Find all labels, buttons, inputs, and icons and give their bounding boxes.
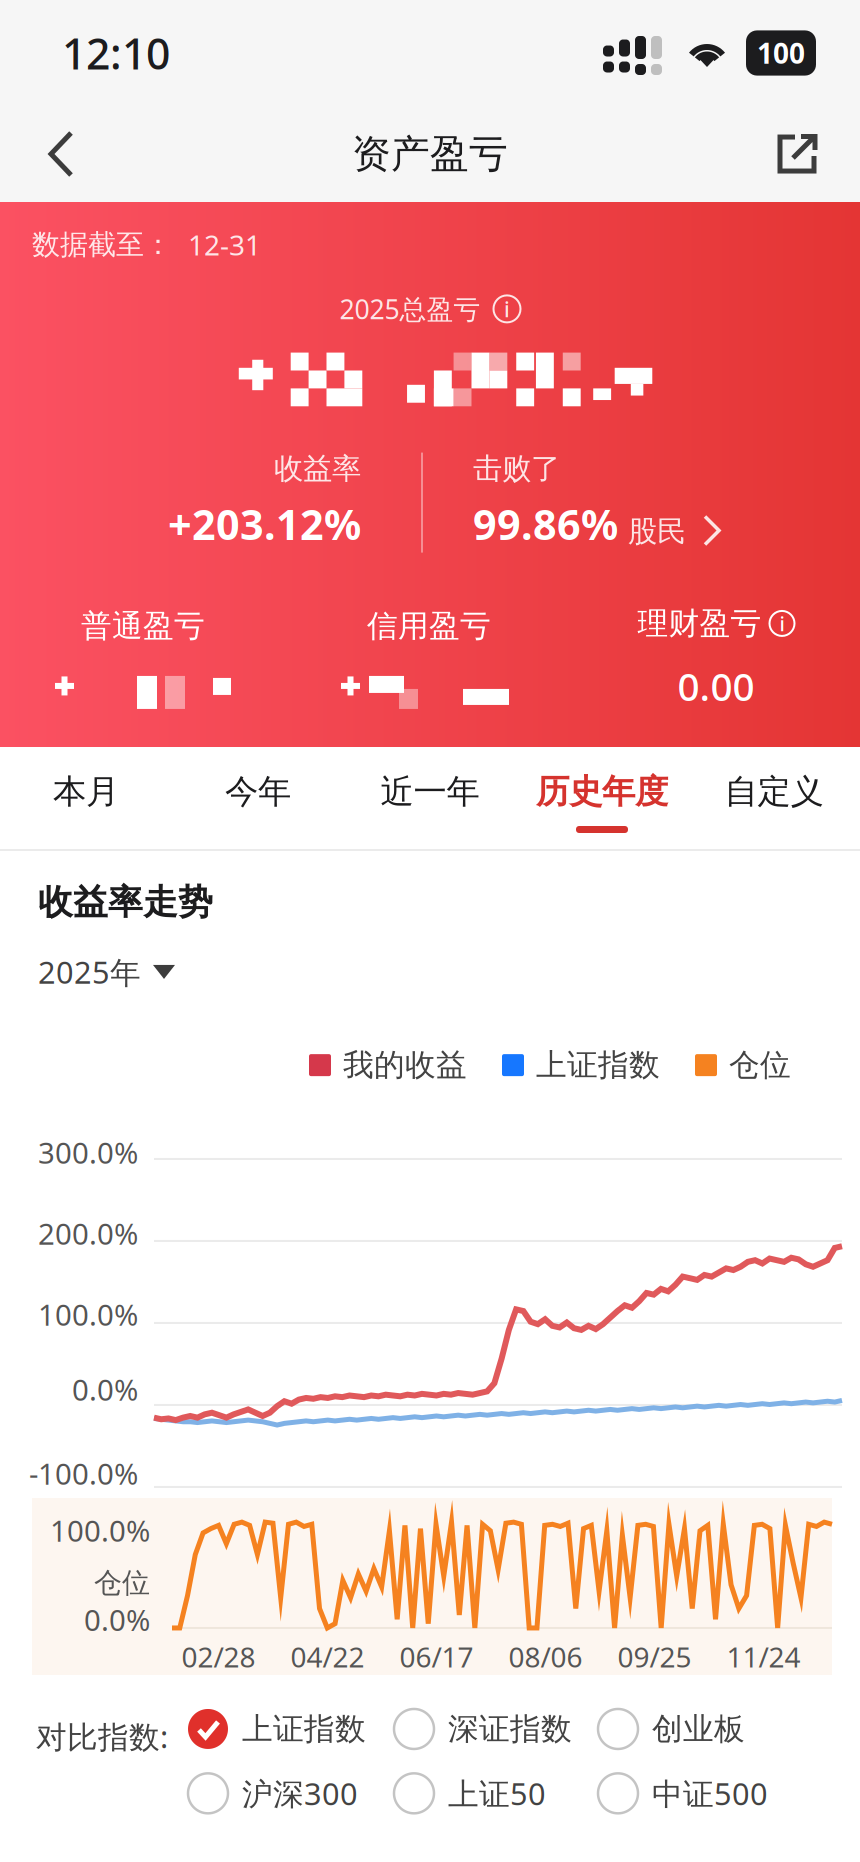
staticText: 06/17 [399,1638,473,1675]
staticText: 信用盈亏 [367,607,491,645]
staticText: 2025总盈亏 [339,291,480,327]
staticText: 100.0% [50,1511,150,1550]
staticText: 中证500 [652,1773,768,1814]
staticText: 08/06 [508,1638,582,1675]
staticText: 普通盈亏 [81,607,205,645]
staticText: 对比指数: [36,1716,168,1757]
staticText: -100.0% [29,1454,138,1493]
staticText: 仓位 [94,1566,150,1600]
staticText: 历史年度 [536,771,668,812]
staticText: 100.0% [38,1295,138,1334]
staticText: 04/22 [290,1638,364,1675]
staticText: 100 [757,34,805,72]
staticText: 本月 [53,771,119,812]
staticText: 上证指数 [242,1710,366,1748]
staticText: 11/24 [726,1638,800,1675]
button[interactable]: 上证指数 [188,1709,366,1749]
staticText: 收益率 [274,451,361,487]
staticText: 仓位 [729,1046,791,1084]
staticText: 沪深300 [242,1773,358,1814]
button[interactable]: 本月 [0,747,172,849]
staticText: 12:10 [62,25,170,81]
staticText: 数据截至： [32,227,172,262]
staticText: 股民 [628,513,686,549]
button[interactable]: 今年 [172,747,344,849]
staticText: 0.00 [677,660,754,712]
staticText: 02/28 [181,1638,255,1675]
button[interactable]: 近一年 [344,747,516,849]
staticText: 自定义 [724,771,823,812]
staticText: 近一年 [380,771,479,812]
staticText: 资产盈亏 [352,130,508,178]
staticText: 09/25 [617,1638,691,1675]
staticText: 0.0% [84,1600,150,1639]
staticText: 收益率走势 [38,881,213,924]
button[interactable]: 沪深300 [188,1773,358,1814]
staticText: 300.0% [38,1133,138,1172]
button[interactable]: 历史年度 [516,747,688,849]
button[interactable]: 2025年 [0,924,175,992]
staticText: 0.0% [72,1370,138,1409]
staticText: i [779,610,784,637]
button[interactable]: 自定义 [688,747,860,849]
button[interactable]: 上证50 [394,1773,546,1814]
staticText: 上证50 [448,1773,546,1814]
staticText: 今年 [225,771,291,812]
staticText: 2025年 [38,952,141,992]
staticText: 12-31 [188,226,261,263]
staticText: +203.12% [168,497,361,551]
staticText: 99.86% [473,497,618,551]
button[interactable]: 返回 [46,106,136,202]
staticText: 创业板 [652,1710,745,1748]
staticText: 上证指数 [536,1046,660,1084]
staticText: i [504,295,510,323]
staticText: 理财盈亏 [637,605,761,642]
button[interactable]: 深证指数 [394,1709,572,1749]
staticText: 深证指数 [448,1710,572,1748]
button[interactable]: 分享 [730,106,820,202]
button[interactable]: 中证500 [598,1773,768,1814]
button[interactable]: 创业板 [598,1709,745,1749]
staticText: 我的收益 [343,1046,467,1084]
staticText: 击败了 [473,451,560,487]
staticText: 200.0% [38,1214,138,1253]
